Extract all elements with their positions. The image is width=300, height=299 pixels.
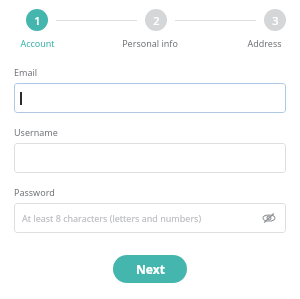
staticText: Next [136,261,165,277]
button[interactable]: 2 [145,9,167,31]
staticText: At least 8 characters (letters and numbe… [22,212,260,224]
staticText: Address [247,37,282,49]
button[interactable]: 3 [264,9,286,31]
staticText: Personal info [122,37,178,49]
staticText: Password [14,186,55,198]
button[interactable] [14,83,286,113]
staticText: Username [14,126,58,138]
staticText: Account [20,37,55,49]
button[interactable]: 1 [26,9,48,31]
button[interactable]: At least 8 characters (letters and numbe… [14,203,286,233]
staticText: Email [14,66,38,78]
staticText: 2 [153,13,160,28]
staticText: 3 [272,13,279,28]
staticText: 1 [34,13,41,28]
button[interactable] [14,143,286,173]
button[interactable]: Show password [260,209,278,227]
button[interactable]: Next [113,255,187,283]
